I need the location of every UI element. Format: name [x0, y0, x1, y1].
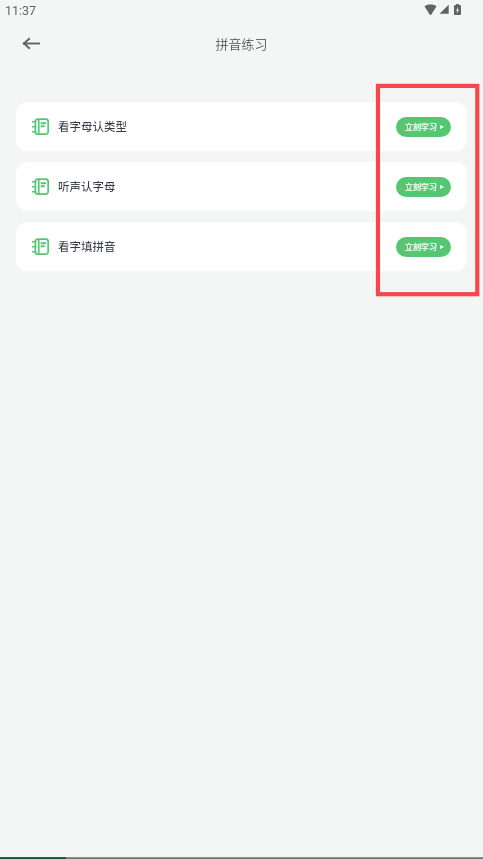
staticText: 听声认字母	[58, 178, 116, 195]
staticText: 拼音练习	[215, 34, 268, 53]
button[interactable]: 立刻学习	[396, 117, 451, 137]
staticText: 11:37	[5, 3, 37, 18]
staticText: 立刻学习	[405, 121, 437, 133]
staticText: 看字填拼音	[58, 238, 116, 255]
staticText: 立刻学习	[405, 241, 437, 253]
staticText: 看字母认类型	[58, 118, 127, 135]
button[interactable]: 立刻学习	[396, 237, 451, 257]
button[interactable]: Back	[9, 22, 52, 65]
button[interactable]: 听声认字母	[16, 162, 467, 211]
button[interactable]: 看字填拼音	[16, 222, 467, 271]
staticText: 立刻学习	[405, 181, 437, 193]
button[interactable]: 看字母认类型	[16, 102, 467, 151]
button[interactable]: 立刻学习	[396, 177, 451, 197]
